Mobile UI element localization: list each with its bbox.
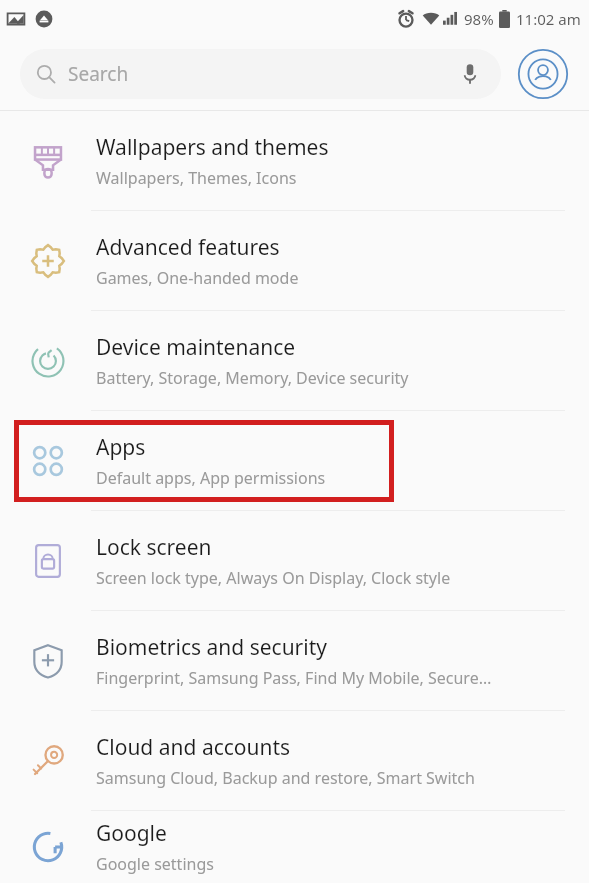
button[interactable]: Search — [20, 49, 501, 99]
button[interactable]: Advanced features — [0, 211, 589, 310]
staticText: Games, One-handed mode — [96, 267, 299, 289]
button[interactable]: Wallpapers and themes — [0, 111, 589, 210]
staticText: Samsung Cloud, Backup and restore, Smart… — [96, 767, 475, 789]
button[interactable]: Device maintenance — [0, 311, 589, 410]
staticText: Search — [68, 61, 455, 87]
button[interactable]: Voice search — [455, 59, 485, 89]
staticText: Device maintenance — [96, 333, 296, 362]
staticText: Cloud and accounts — [96, 733, 291, 762]
button[interactable]: Lock screen — [0, 511, 589, 610]
staticText: Lock screen — [96, 533, 212, 562]
button[interactable]: Biometrics and security — [0, 611, 589, 710]
button[interactable]: Cloud and accounts — [0, 711, 589, 810]
button[interactable]: Google — [0, 811, 589, 883]
staticText: Default apps, App permissions — [96, 467, 326, 489]
staticText: Google — [96, 819, 167, 848]
staticText: Wallpapers and themes — [96, 133, 329, 162]
staticText: Advanced features — [96, 233, 280, 262]
staticText: Google settings — [96, 853, 214, 875]
button[interactable]: Account — [517, 48, 569, 100]
button[interactable]: Apps — [0, 411, 589, 510]
staticText: 98% — [464, 9, 494, 29]
staticText: Fingerprint, Samsung Pass, Find My Mobil… — [96, 667, 492, 689]
staticText: Apps — [96, 433, 146, 462]
staticText: Wallpapers, Themes, Icons — [96, 167, 297, 189]
staticText: Biometrics and security — [96, 633, 327, 662]
staticText: 11:02 am — [516, 9, 581, 29]
staticText: Screen lock type, Always On Display, Clo… — [96, 567, 451, 589]
staticText: Battery, Storage, Memory, Device securit… — [96, 367, 409, 389]
